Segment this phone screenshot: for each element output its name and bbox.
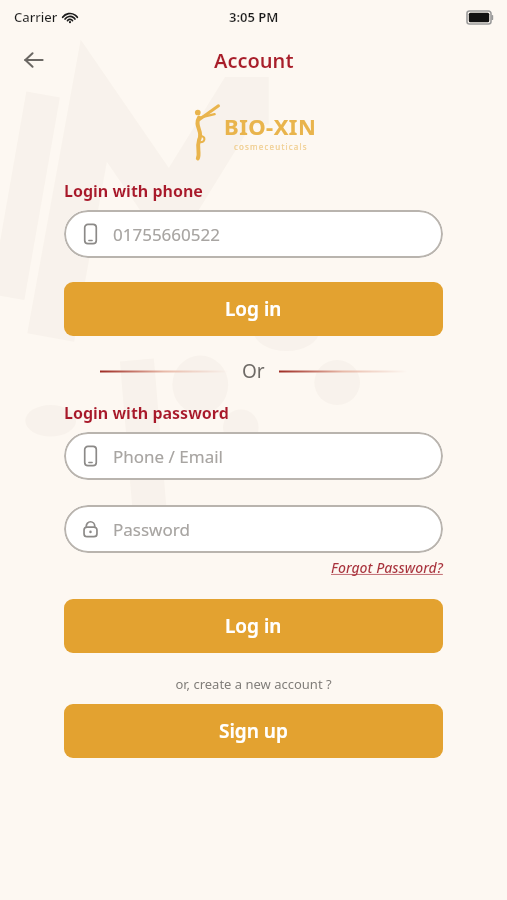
button[interactable]: Sign up: [64, 704, 443, 758]
staticText: Or: [242, 358, 265, 384]
button[interactable]: Phone / Email: [64, 432, 443, 480]
staticText: Phone / Email: [113, 445, 223, 468]
staticText: Login with password: [64, 402, 229, 424]
button[interactable]: Back: [12, 38, 56, 82]
button[interactable]: Password: [64, 505, 443, 553]
staticText: 3:05 PM: [229, 8, 279, 26]
staticText: or, create a new account ?: [64, 675, 443, 693]
button[interactable]: 01755660522: [64, 210, 443, 258]
staticText: Account: [214, 47, 294, 74]
staticText: BIO-XIN: [224, 111, 317, 141]
staticText: Log in: [225, 613, 282, 639]
staticText: Log in: [225, 296, 282, 322]
staticText: Carrier: [14, 8, 58, 26]
button[interactable]: Forgot Password?: [331, 558, 443, 577]
staticText: 01755660522: [113, 223, 220, 246]
staticText: Password: [113, 518, 190, 541]
staticText: Login with phone: [64, 180, 203, 202]
button[interactable]: Log in: [64, 282, 443, 336]
staticText: Sign up: [219, 718, 288, 744]
staticText: cosmeceuticals: [234, 141, 308, 152]
button[interactable]: Log in: [64, 599, 443, 653]
